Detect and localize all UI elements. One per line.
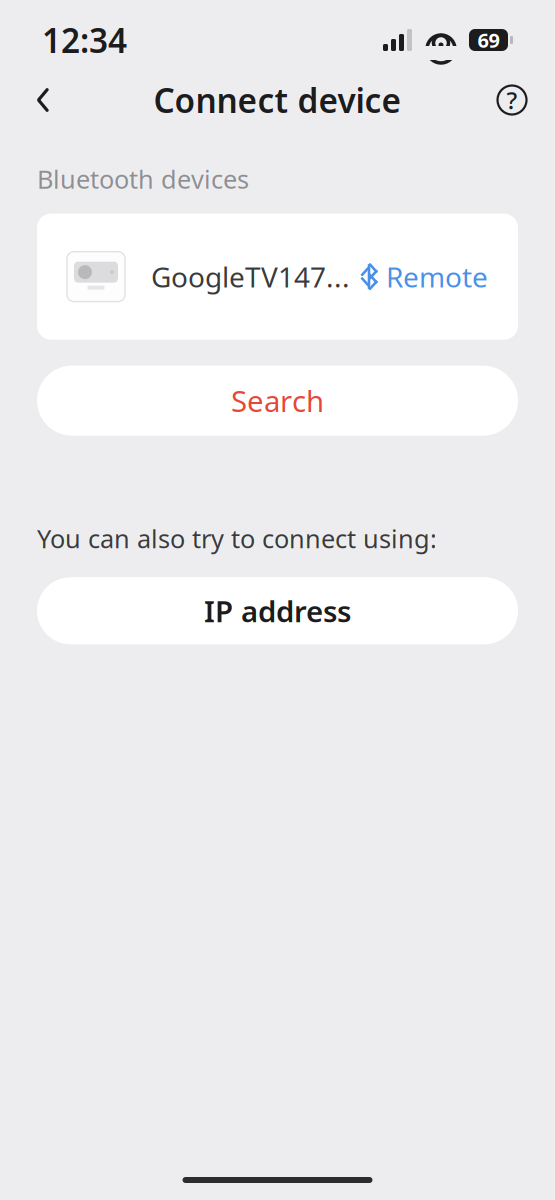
staticText: Connect device: [153, 78, 401, 122]
button[interactable]: IP address: [37, 577, 518, 644]
button[interactable]: Search: [37, 366, 518, 436]
staticText: IP address: [204, 591, 351, 630]
button[interactable]: Back: [20, 77, 66, 123]
staticText: 12:34: [42, 18, 127, 62]
staticText: GoogleTV147...: [151, 258, 350, 295]
staticText: You can also try to connect using:: [37, 522, 437, 555]
staticText: 69: [477, 27, 499, 53]
button[interactable]: Help: [489, 77, 535, 123]
staticText: Search: [231, 381, 324, 420]
staticText: ?: [506, 84, 517, 116]
staticText: Bluetooth devices: [37, 162, 249, 196]
staticText: Remote: [386, 258, 488, 295]
button[interactable]: GoogleTV147...: [37, 214, 518, 340]
